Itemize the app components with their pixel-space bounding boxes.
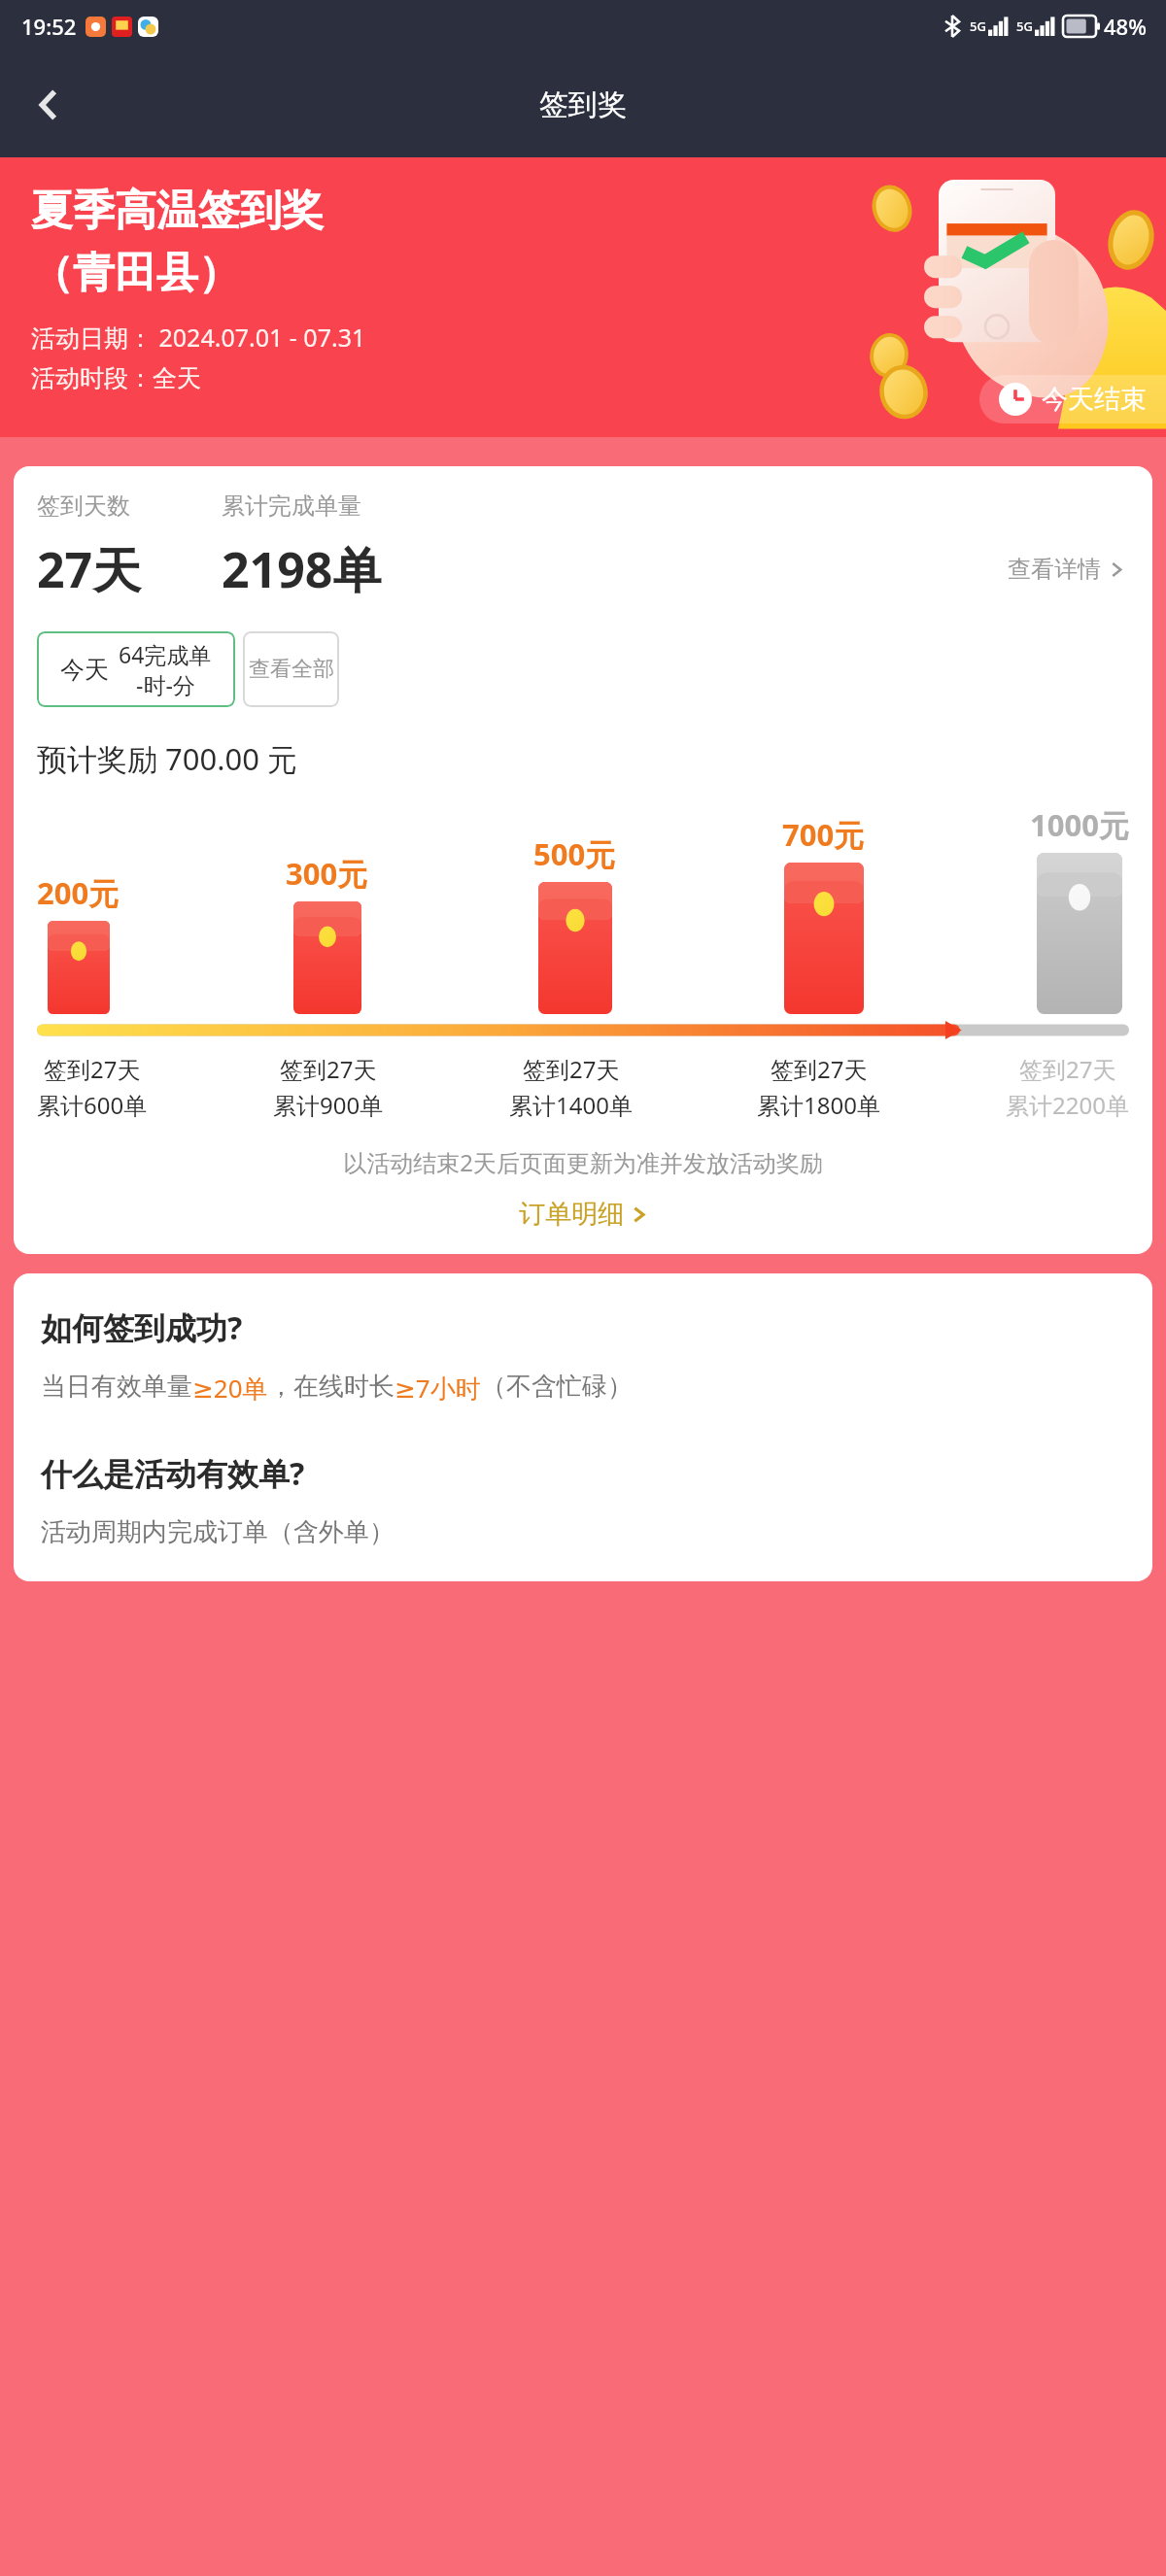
staticText: 订单明细 bbox=[519, 1198, 624, 1231]
staticText: 当日有效单量 bbox=[41, 1371, 192, 1403]
staticText: ，在线时长 bbox=[268, 1371, 394, 1403]
staticText: 64完成单 bbox=[119, 639, 212, 669]
staticText: ≥7小时 bbox=[394, 1371, 481, 1406]
staticText: 活动时段：全天 bbox=[31, 363, 201, 393]
staticText: 活动日期： 2024.07.01 - 07.31 bbox=[31, 321, 366, 354]
staticText: （青田县） bbox=[31, 247, 240, 299]
button[interactable]: 订单明细 bbox=[37, 1196, 1129, 1233]
staticText: 5G bbox=[1016, 17, 1033, 35]
button[interactable]: 查看全部 bbox=[243, 631, 339, 707]
staticText: ≥20单 bbox=[192, 1371, 268, 1406]
staticText: 500元 bbox=[533, 833, 616, 874]
staticText: 如何签到成功? bbox=[41, 1306, 243, 1349]
staticText: 1000元 bbox=[1030, 804, 1129, 845]
staticText: -时-分 bbox=[136, 669, 195, 699]
staticText: 累计完成单量 bbox=[222, 491, 361, 521]
staticText: 签到27天 bbox=[771, 1053, 868, 1085]
staticText: 5G bbox=[970, 17, 986, 35]
staticText: 查看全部 bbox=[249, 656, 334, 683]
staticText: 签到27天 bbox=[1019, 1053, 1116, 1085]
staticText: 200元 bbox=[37, 872, 120, 913]
staticText: 签到27天 bbox=[523, 1053, 620, 1085]
staticText: 累计600单 bbox=[37, 1089, 148, 1121]
staticText: （不含忙碌） bbox=[481, 1371, 633, 1403]
staticText: 300元 bbox=[286, 853, 368, 894]
staticText: 夏季高温签到奖 bbox=[31, 185, 324, 237]
staticText: 累计2200单 bbox=[1006, 1089, 1129, 1121]
button[interactable]: Back bbox=[17, 74, 80, 136]
staticText: 19:52 bbox=[21, 12, 77, 41]
staticText: 2198单 bbox=[222, 536, 382, 602]
staticText: 今天 bbox=[60, 655, 109, 685]
staticText: 累计900单 bbox=[273, 1089, 384, 1121]
staticText: 签到天数 bbox=[37, 491, 222, 521]
staticText: 签到奖 bbox=[539, 86, 627, 123]
staticText: 累计1800单 bbox=[757, 1089, 880, 1121]
staticText: 活动周期内完成订单（含外单） bbox=[41, 1516, 394, 1548]
staticText: 查看详情 bbox=[1008, 555, 1101, 584]
staticText: 签到27天 bbox=[280, 1053, 377, 1085]
staticText: 累计1400单 bbox=[509, 1089, 633, 1121]
staticText: 预计奖励 700.00 元 bbox=[37, 738, 298, 779]
staticText: 48% bbox=[1104, 12, 1147, 41]
staticText: 今天结束 bbox=[1042, 383, 1147, 416]
button[interactable]: 今天 bbox=[37, 631, 235, 707]
staticText: 以活动结束2天后页面更新为准并发放活动奖励 bbox=[37, 1146, 1129, 1178]
staticText: 700元 bbox=[782, 814, 865, 855]
button[interactable]: 查看详情 bbox=[1004, 551, 1129, 588]
staticText: 什么是活动有效单? bbox=[41, 1452, 305, 1495]
staticText: 27天 bbox=[37, 536, 222, 602]
staticText: 签到27天 bbox=[44, 1053, 141, 1085]
button[interactable]: 今天结束 bbox=[979, 375, 1166, 424]
